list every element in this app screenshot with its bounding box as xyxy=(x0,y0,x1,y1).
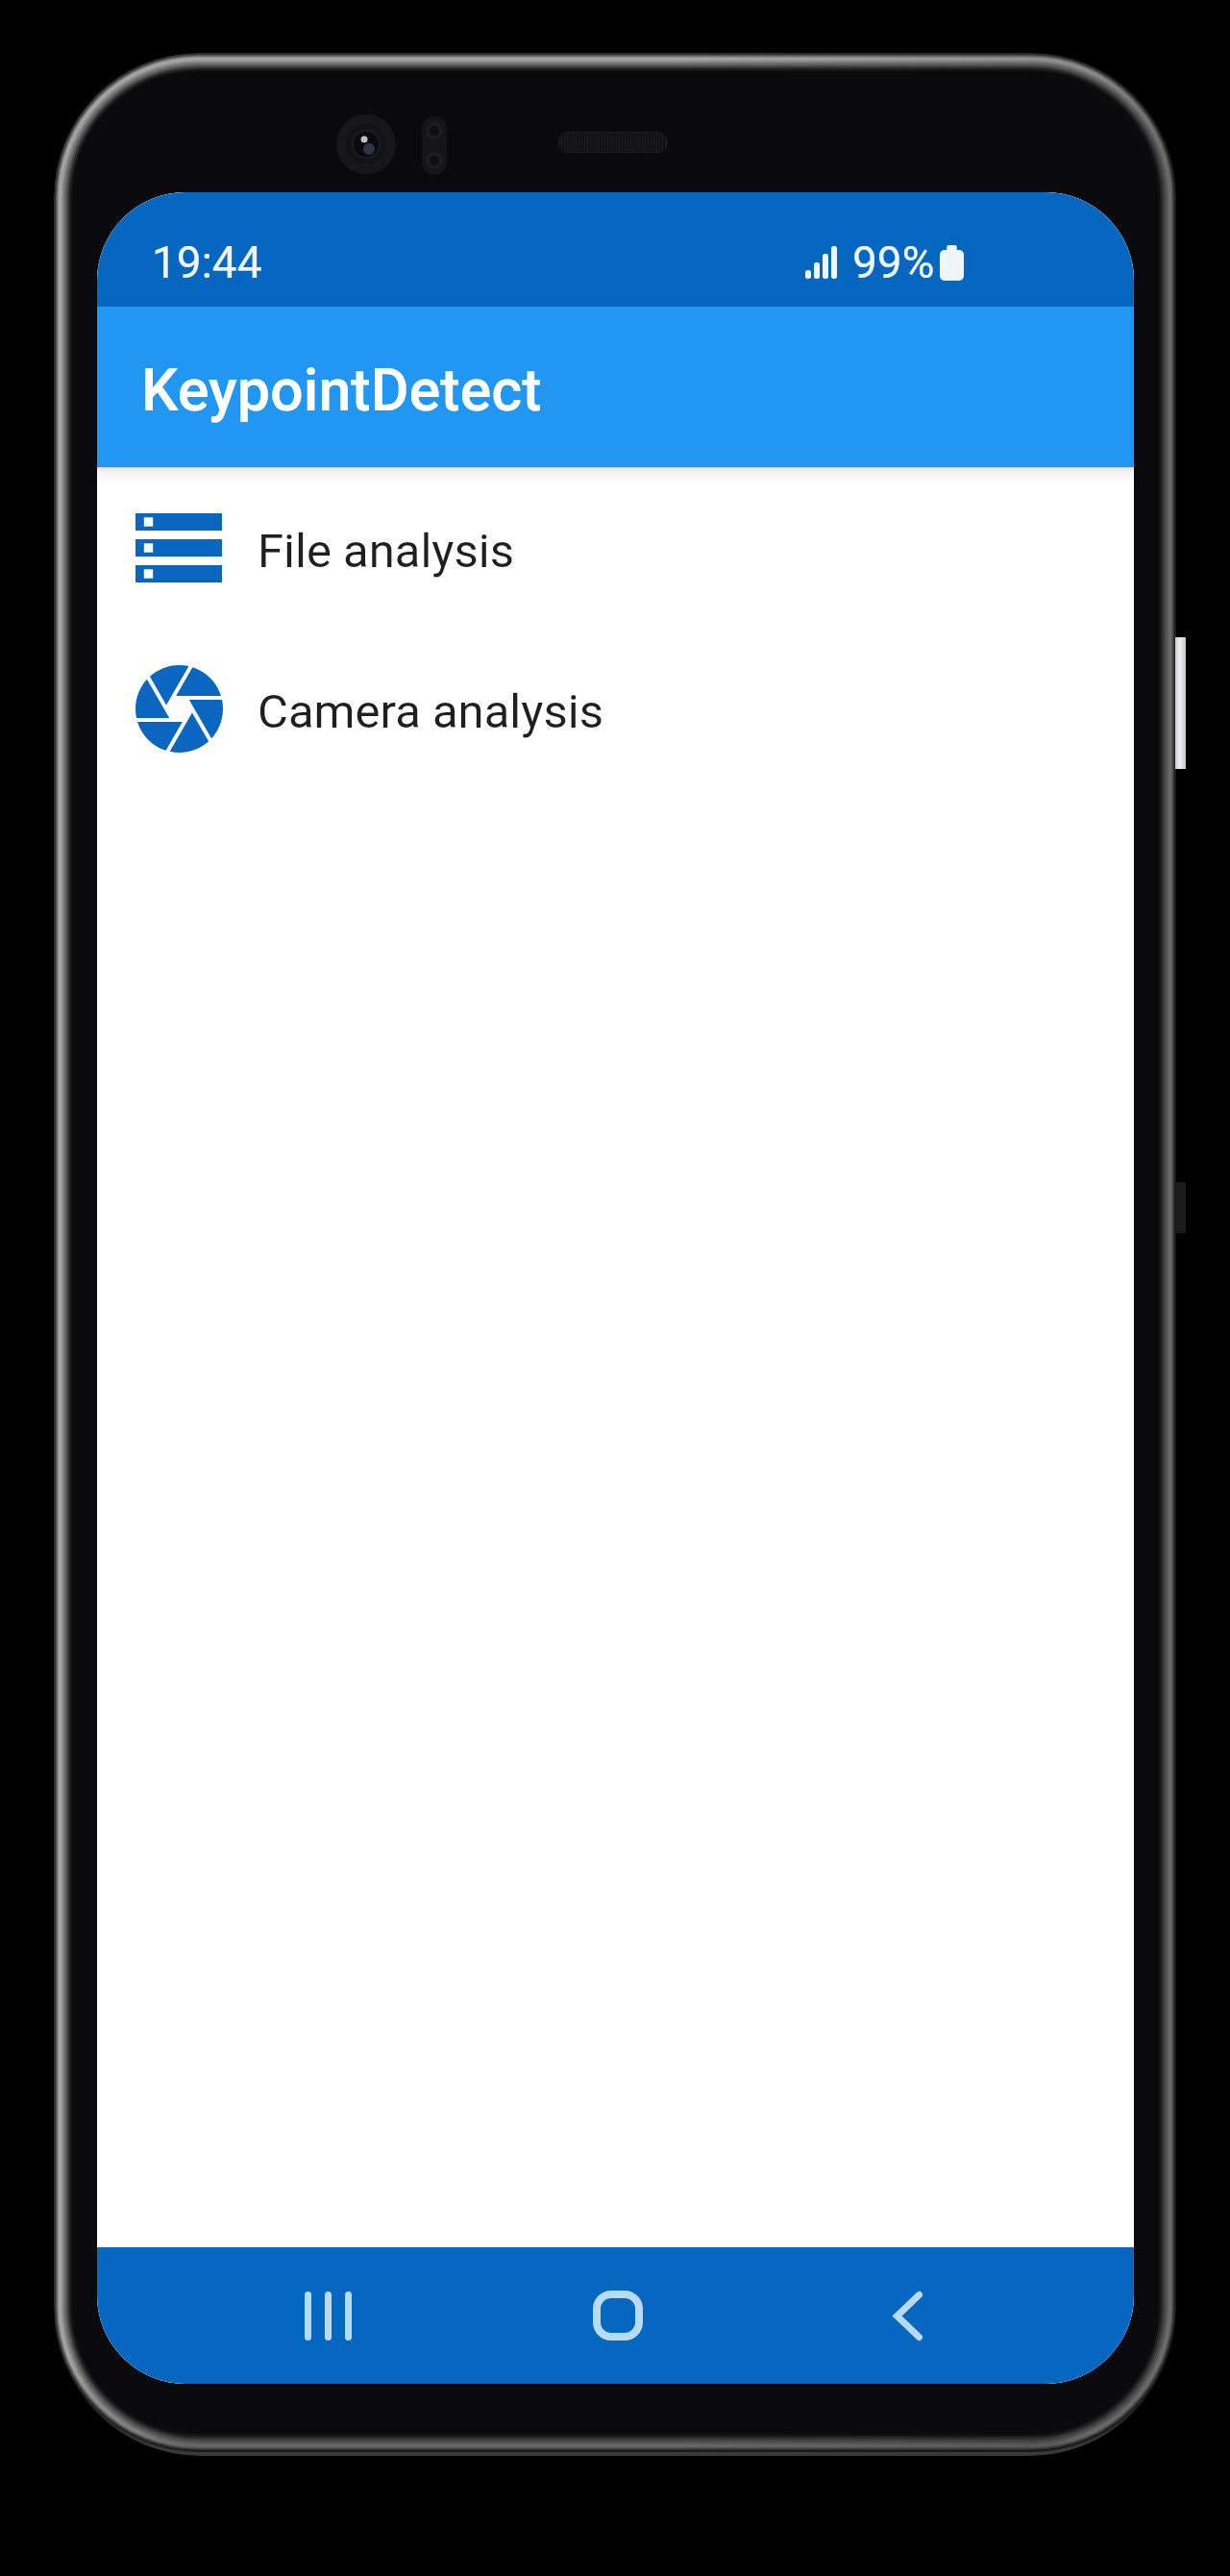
button[interactable]: Recent apps xyxy=(256,2247,400,2384)
button[interactable]: Back xyxy=(836,2247,980,2384)
staticText: File analysis xyxy=(258,524,515,579)
staticText: KeypointDetect xyxy=(141,356,542,424)
button[interactable]: Home xyxy=(546,2247,690,2384)
staticText: 19:44 xyxy=(152,236,262,288)
button[interactable]: File analysis xyxy=(97,469,1134,630)
staticText: Camera analysis xyxy=(258,684,603,739)
staticText: 99% xyxy=(852,236,935,288)
button[interactable]: Camera analysis xyxy=(97,630,1134,790)
